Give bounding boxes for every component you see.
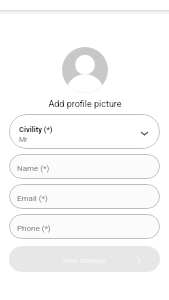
button[interactable]: Phone (*) bbox=[9, 214, 160, 239]
staticText: Mr bbox=[19, 136, 28, 144]
staticText: Phone (*) bbox=[17, 224, 51, 233]
staticText: Civility (*) bbox=[19, 125, 53, 134]
staticText: Name (*) bbox=[17, 164, 50, 173]
button[interactable]: Name (*) bbox=[9, 154, 160, 179]
staticText: Add profile picture bbox=[48, 99, 122, 110]
button[interactable]: Add profile picture bbox=[0, 99, 169, 110]
staticText: Email (*) bbox=[17, 194, 48, 203]
button[interactable]: Civility (*) bbox=[9, 114, 160, 149]
button[interactable]: Email (*) bbox=[9, 184, 160, 209]
button[interactable]: Add profile picture bbox=[62, 47, 108, 93]
staticText: Save changes bbox=[63, 257, 107, 265]
button[interactable]: Save changes bbox=[9, 246, 160, 272]
